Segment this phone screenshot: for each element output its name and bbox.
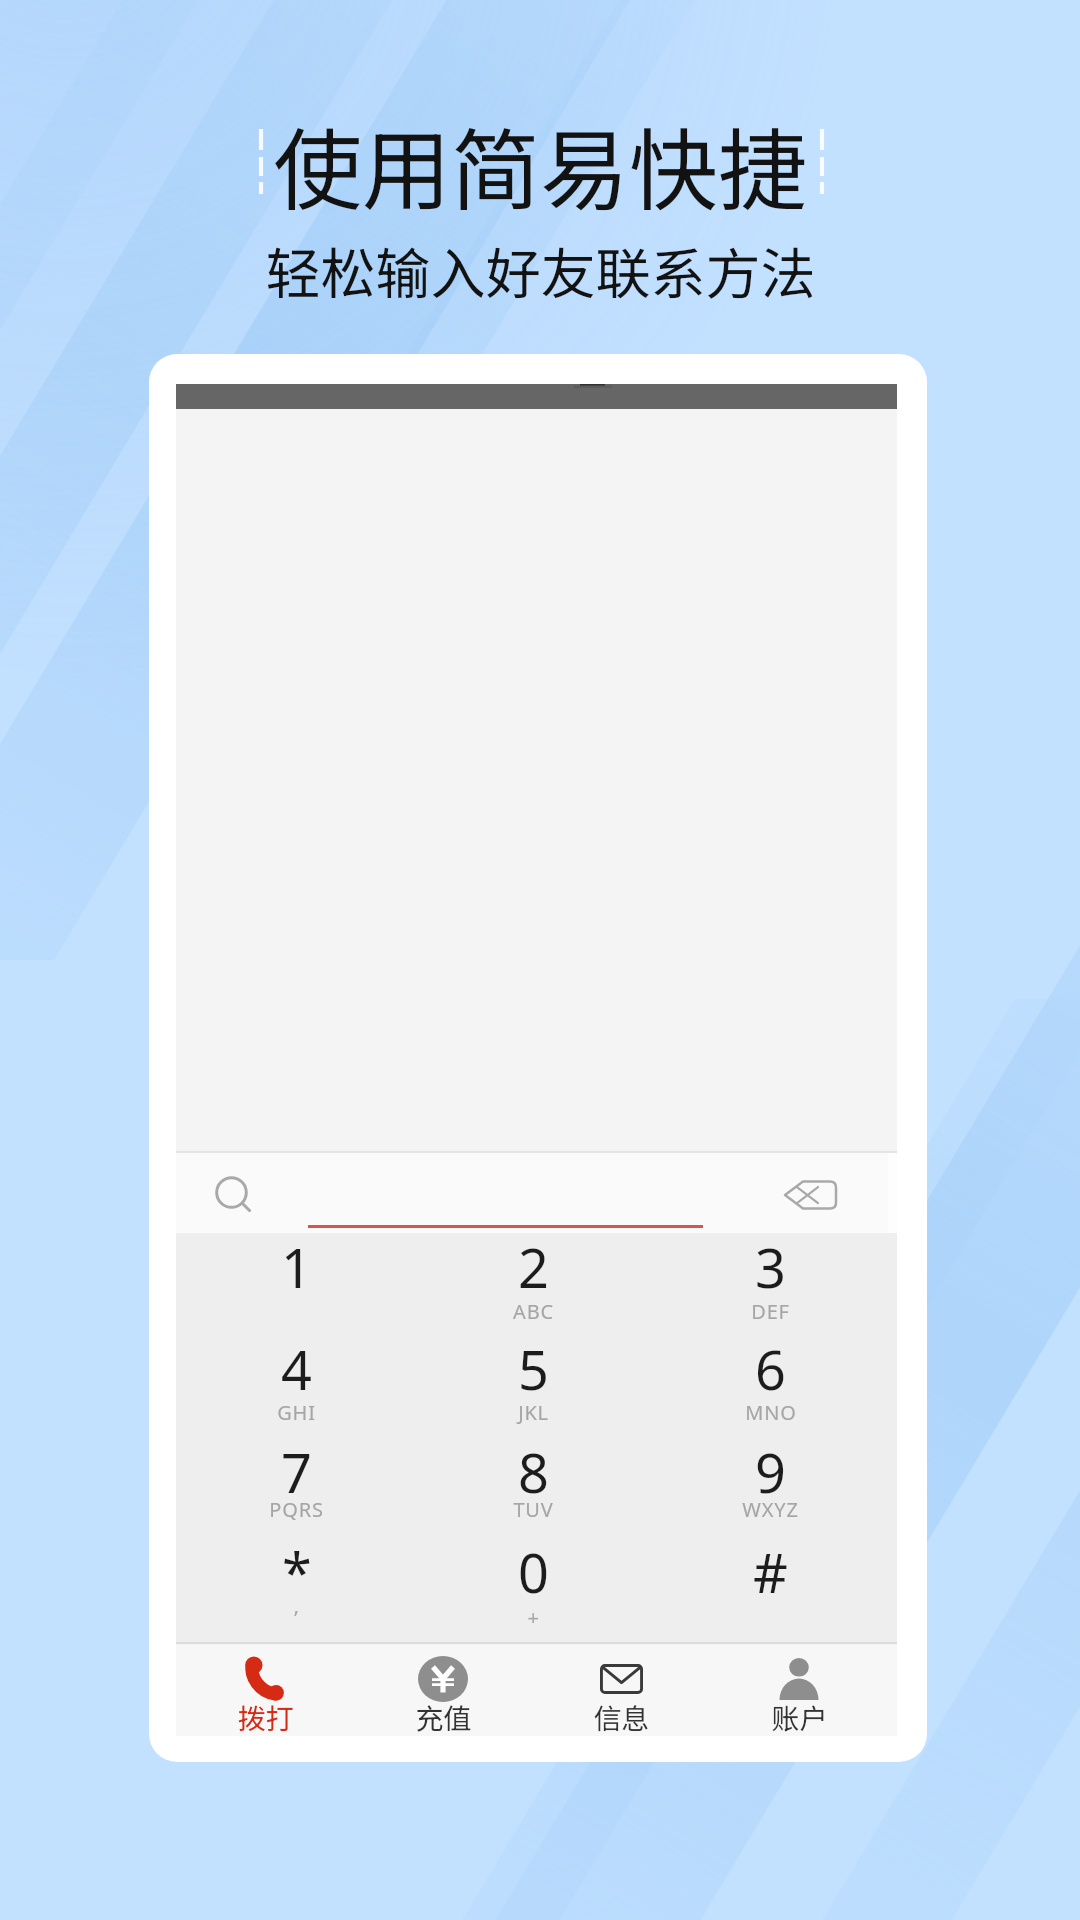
staticText: WXYZ: [742, 1496, 799, 1523]
button[interactable]: 0: [415, 1537, 652, 1638]
staticText: 7: [281, 1435, 312, 1509]
staticText: 账户: [771, 1697, 828, 1738]
staticText: 轻松输入好友联系方法: [265, 230, 816, 310]
staticText: +: [527, 1604, 540, 1631]
staticText: JKL: [518, 1399, 549, 1426]
staticText: TUV: [513, 1496, 554, 1523]
button[interactable]: #: [652, 1537, 889, 1638]
button[interactable]: 3: [652, 1233, 889, 1334]
button[interactable]: 充值: [354, 1645, 532, 1736]
button[interactable]: 拨打: [176, 1645, 354, 1736]
staticText: #: [753, 1535, 788, 1609]
button[interactable]: Search: [207, 1170, 259, 1222]
button[interactable]: 2: [415, 1233, 652, 1334]
staticText: *: [282, 1535, 312, 1609]
button[interactable]: *: [178, 1537, 415, 1638]
button[interactable]: 7: [178, 1436, 415, 1537]
button[interactable]: 账户: [710, 1645, 888, 1736]
staticText: MNO: [745, 1399, 797, 1426]
button[interactable]: 8: [415, 1436, 652, 1537]
staticText: 9: [755, 1435, 786, 1509]
staticText: 8: [518, 1435, 549, 1509]
button[interactable]: 4: [178, 1334, 415, 1435]
staticText: 5: [518, 1332, 549, 1406]
staticText: 6: [755, 1332, 786, 1406]
staticText: 4: [281, 1332, 312, 1406]
staticText: DEF: [751, 1298, 790, 1325]
button[interactable]: 信息: [532, 1645, 710, 1736]
button[interactable]: 5: [415, 1334, 652, 1435]
staticText: 使用简易快捷: [273, 100, 807, 229]
button[interactable]: 1: [178, 1233, 415, 1334]
button[interactable]: 6: [652, 1334, 889, 1435]
button[interactable]: 9: [652, 1436, 889, 1537]
staticText: 3: [755, 1230, 786, 1304]
staticText: ’: [294, 1604, 299, 1631]
staticText: 2: [518, 1230, 549, 1304]
staticText: PQRS: [269, 1496, 324, 1523]
staticText: 1: [281, 1230, 312, 1304]
staticText: 0: [518, 1535, 549, 1609]
staticText: ABC: [513, 1298, 554, 1325]
button[interactable]: Delete: [777, 1171, 849, 1217]
staticText: 拨打: [237, 1697, 294, 1738]
staticText: 充值: [415, 1697, 472, 1738]
staticText: GHI: [277, 1399, 316, 1426]
staticText: 信息: [593, 1697, 650, 1738]
